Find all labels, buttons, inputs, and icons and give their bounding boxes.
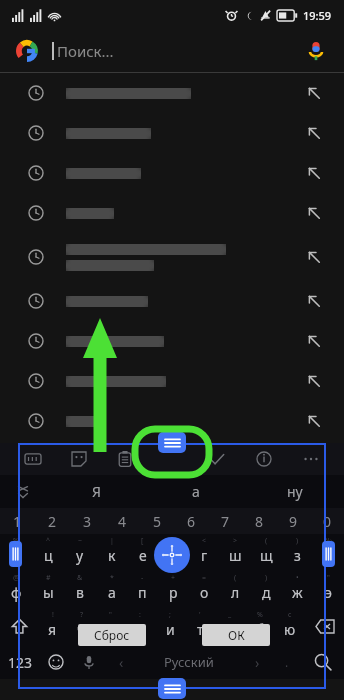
button[interactable]: #: [32, 571, 64, 608]
button[interactable]: 6: [174, 508, 208, 534]
button[interactable]: 1: [0, 508, 35, 534]
button[interactable]: Check: [206, 448, 228, 470]
button[interactable]: ": [96, 608, 125, 645]
button[interactable]: 5: [140, 508, 174, 534]
button[interactable]: 0: [310, 508, 344, 534]
staticText: 5: [153, 512, 162, 531]
button[interactable]: ^: [32, 534, 64, 571]
button[interactable]: Resize left: [9, 541, 22, 567]
button[interactable]: [0, 281, 344, 321]
staticText: 7: [221, 512, 230, 531]
button[interactable]: с: [275, 608, 305, 645]
button[interactable]: +: [158, 571, 189, 608]
button[interactable]: 8: [242, 508, 276, 534]
button[interactable]: @: [0, 571, 32, 608]
button[interactable]: GIF: [22, 448, 44, 470]
button[interactable]: [0, 73, 344, 113]
staticText: 6: [187, 512, 196, 531]
button[interactable]: ]: [158, 534, 189, 571]
button[interactable]: ~: [64, 534, 96, 571]
button[interactable]: Emoji: [40, 645, 72, 679]
staticText: (: [265, 536, 268, 546]
button[interactable]: ‹: [106, 645, 136, 679]
staticText: я: [48, 620, 57, 639]
button[interactable]: ): [251, 571, 282, 608]
button[interactable]: >: [220, 534, 251, 571]
staticText: ': [199, 610, 201, 620]
button[interactable]: Voice input: [72, 645, 106, 679]
button[interactable]: ": [313, 571, 344, 608]
button[interactable]: ОК: [202, 624, 270, 646]
button[interactable]: Info: [253, 448, 275, 470]
button[interactable]: [0, 321, 344, 361]
button[interactable]: %: [0, 534, 32, 571]
button[interactable]: [0, 361, 344, 401]
button[interactable]: Сброс: [78, 624, 146, 646]
button[interactable]: Русский: [136, 645, 242, 679]
button[interactable]: ;: [155, 608, 185, 645]
button[interactable]: *: [96, 571, 127, 608]
button[interactable]: !: [38, 608, 67, 645]
button[interactable]: %: [245, 608, 275, 645]
button[interactable]: [: [127, 534, 158, 571]
button[interactable]: [0, 401, 344, 441]
button[interactable]: 2: [35, 508, 70, 534]
staticText: ?: [80, 610, 84, 620]
button[interactable]: :: [125, 608, 155, 645]
button[interactable]: [0, 113, 344, 153]
button[interactable]: Backspace: [305, 608, 344, 645]
button[interactable]: |: [96, 534, 127, 571]
staticText: т: [197, 620, 204, 639]
button[interactable]: [0, 233, 344, 281]
button[interactable]: Move keyboard: [154, 537, 190, 573]
button[interactable]: №: [313, 534, 344, 571]
button[interactable]: ': [185, 608, 215, 645]
button[interactable]: _: [215, 608, 245, 645]
button[interactable]: Keyboard handle: [158, 432, 186, 453]
button[interactable]: [0, 193, 344, 233]
staticText: _: [228, 610, 232, 620]
button[interactable]: а: [146, 475, 245, 508]
staticText: ж: [292, 583, 303, 602]
button[interactable]: •: [282, 571, 313, 608]
staticText: ›: [255, 653, 260, 672]
button[interactable]: ?: [67, 608, 96, 645]
button[interactable]: [0, 153, 344, 193]
button[interactable]: 3: [70, 508, 105, 534]
button[interactable]: ): [282, 534, 313, 571]
staticText: й: [12, 546, 21, 565]
button[interactable]: ну: [245, 475, 344, 508]
staticText: ч: [77, 620, 86, 639]
button[interactable]: 7: [208, 508, 242, 534]
staticText: 3: [83, 512, 92, 531]
button[interactable]: 123: [0, 645, 40, 679]
staticText: @: [13, 573, 20, 583]
button[interactable]: Stickers: [68, 448, 90, 470]
button[interactable]: =: [189, 571, 220, 608]
staticText: ): [296, 536, 299, 546]
staticText: ;: [169, 610, 171, 620]
button[interactable]: Search: [302, 645, 344, 679]
staticText: л: [231, 583, 240, 602]
button[interactable]: -: [127, 571, 158, 608]
button[interactable]: Я: [46, 475, 146, 508]
button[interactable]: 4: [105, 508, 140, 534]
button[interactable]: Resize right: [322, 541, 335, 567]
button[interactable]: Voice search: [304, 39, 328, 63]
button[interactable]: Keyboard bottom handle: [158, 678, 186, 699]
button[interactable]: Expand: [0, 475, 46, 508]
button[interactable]: Clipboard: [114, 448, 136, 470]
button[interactable]: Shift: [0, 608, 38, 645]
staticText: ^: [46, 536, 51, 546]
staticText: о: [200, 583, 209, 602]
button[interactable]: (: [220, 571, 251, 608]
button[interactable]: Поиск...: [16, 30, 328, 72]
button[interactable]: ›: [242, 645, 272, 679]
button[interactable]: <: [189, 534, 220, 571]
button[interactable]: (: [251, 534, 282, 571]
button[interactable]: 9: [276, 508, 310, 534]
button[interactable]: More: [300, 448, 322, 470]
staticText: б: [256, 620, 265, 639]
button[interactable]: &: [64, 571, 96, 608]
